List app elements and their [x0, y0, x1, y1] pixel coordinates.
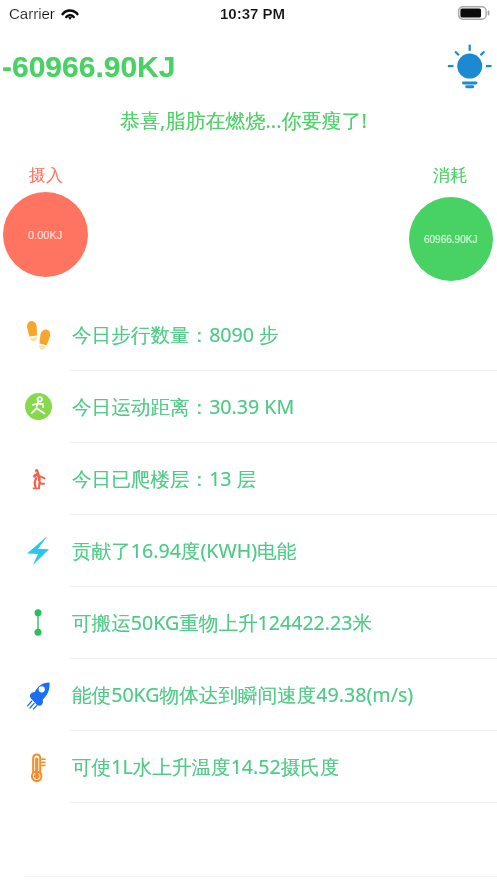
button[interactable]: 今日步行数量：8090 步	[0, 299, 497, 371]
button[interactable]: 今日已爬楼层：13 层	[0, 443, 497, 515]
staticText: 摄入	[29, 165, 63, 186]
staticText: 消耗	[433, 165, 467, 186]
staticText: 贡献了16.94度(KWH)电能	[72, 537, 297, 564]
staticText: 可使1L水上升温度14.52摄氏度	[72, 753, 340, 780]
staticText: 恭喜,脂肪在燃烧...你要瘦了!	[0, 107, 492, 134]
staticText: 今日已爬楼层：13 层	[72, 465, 257, 492]
staticText: 能使50KG物体达到瞬间速度49.38(m/s)	[72, 681, 414, 708]
staticText: 今日步行数量：8090 步	[72, 321, 279, 348]
staticText: 10:37 PM	[220, 5, 286, 22]
button[interactable]: 今日运动距离：30.39 KM	[0, 371, 497, 443]
button[interactable]: 贡献了16.94度(KWH)电能	[0, 515, 497, 587]
staticText: 0.00KJ	[28, 229, 63, 241]
staticText: 今日运动距离：30.39 KM	[72, 393, 295, 420]
staticText: 60966.90KJ	[424, 234, 478, 245]
staticText: Carrier	[9, 5, 55, 22]
button[interactable]: 能使50KG物体达到瞬间速度49.38(m/s)	[0, 659, 497, 731]
staticText: -60966.90KJ	[2, 50, 176, 84]
button[interactable]: 可使1L水上升温度14.52摄氏度	[0, 731, 497, 803]
button[interactable]: Tips	[446, 43, 493, 90]
button[interactable]: 60966.90KJ	[409, 197, 493, 281]
button[interactable]: 0.00KJ	[3, 192, 88, 277]
button[interactable]: 可搬运50KG重物上升124422.23米	[0, 587, 497, 659]
staticText: 可搬运50KG重物上升124422.23米	[72, 609, 373, 636]
